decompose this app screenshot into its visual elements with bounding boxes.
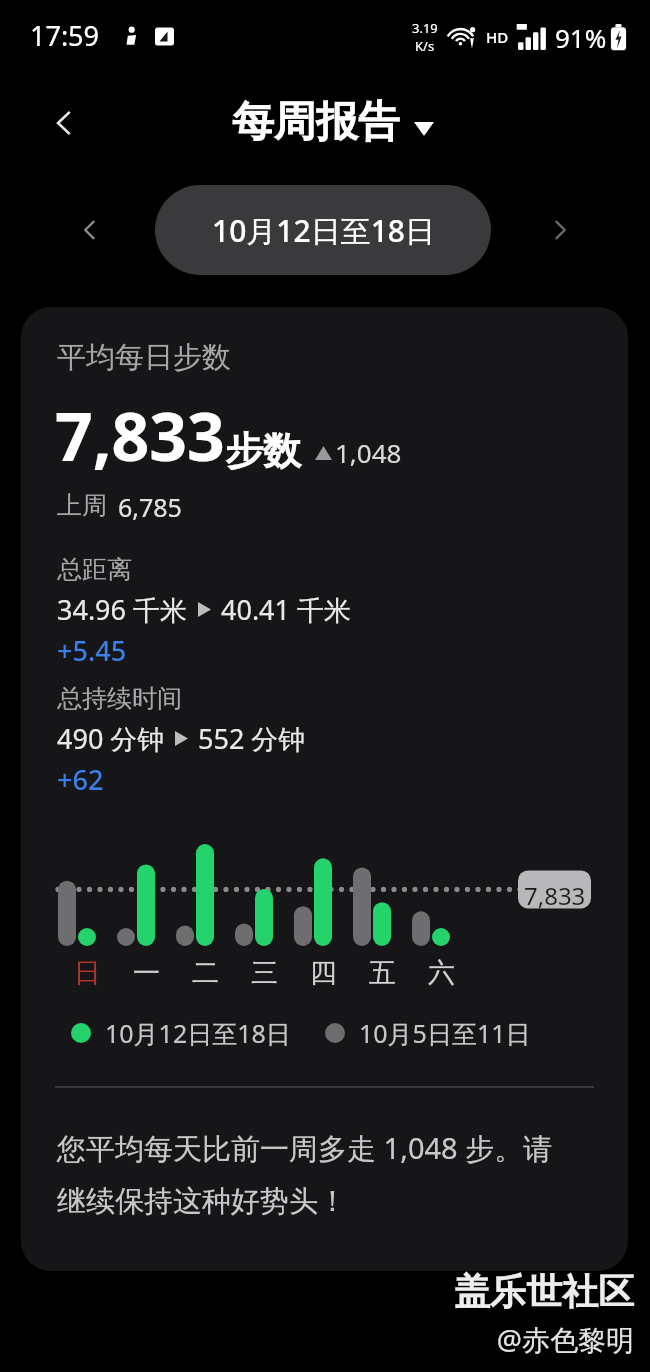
staticText: 总持续时间: [57, 683, 182, 714]
staticText: 10月5日至11日: [359, 1016, 531, 1050]
staticText: 10月12日至18日: [212, 210, 435, 251]
staticText: 3.19: [412, 19, 438, 37]
staticText: 步数: [225, 427, 301, 475]
staticText: @赤色黎明: [496, 1320, 634, 1358]
staticText: 7,833: [55, 390, 225, 480]
staticText: 6,785: [118, 490, 182, 524]
staticText: 四: [310, 956, 337, 990]
staticText: 上周: [57, 490, 107, 521]
staticText: 7,833: [524, 879, 586, 912]
staticText: 91%: [555, 20, 607, 55]
staticText: 六: [428, 956, 455, 990]
staticText: 平均每日步数: [57, 339, 231, 376]
staticText: 您平均每天比前一周多走 1,048 步。请 继续保持这种好势头！: [57, 1128, 553, 1219]
button[interactable]: Next week: [532, 202, 588, 258]
staticText: 一: [133, 956, 160, 990]
staticText: 盖乐世社区: [454, 1269, 634, 1314]
staticText: 三: [251, 956, 278, 990]
staticText: HD: [486, 27, 509, 47]
button[interactable]: 平均每日步数: [21, 307, 628, 1271]
button[interactable]: Back: [36, 95, 92, 151]
staticText: 17:59: [30, 17, 100, 54]
button[interactable]: 10月12日至18日: [155, 185, 491, 275]
staticText: +5.45: [57, 632, 127, 669]
staticText: 五: [369, 956, 396, 990]
staticText: 二: [192, 956, 219, 990]
staticText: 40.41 千米: [221, 591, 352, 628]
staticText: 34.96 千米: [57, 591, 188, 628]
staticText: 10月12日至18日: [105, 1016, 291, 1050]
staticText: 490 分钟: [57, 720, 165, 757]
staticText: 552 分钟: [198, 720, 306, 757]
staticText: 1,048: [335, 435, 402, 470]
button[interactable]: Previous week: [62, 202, 118, 258]
staticText: +62: [57, 761, 104, 798]
staticText: 日: [74, 956, 101, 990]
button[interactable]: 每周报告: [232, 96, 434, 149]
staticText: K/s: [415, 37, 435, 55]
staticText: 总距离: [57, 554, 132, 585]
staticText: 每周报告: [232, 96, 400, 149]
